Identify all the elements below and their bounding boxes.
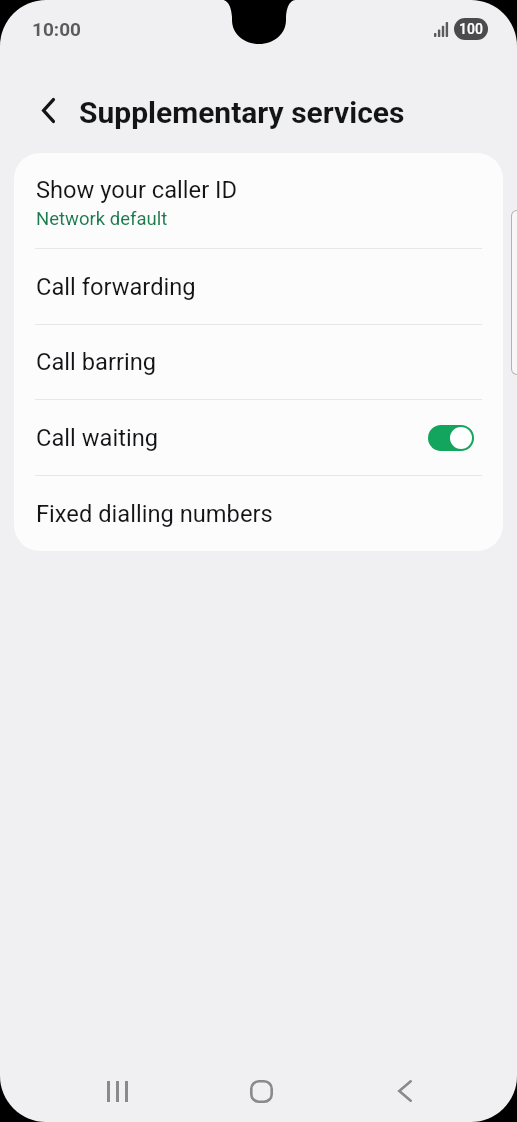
button[interactable]: Home — [189, 1060, 333, 1122]
staticText: Call barring — [36, 348, 157, 376]
button[interactable]: Call barring — [14, 325, 503, 399]
staticText: Supplementary services — [79, 95, 405, 130]
button[interactable]: Back — [333, 1060, 477, 1122]
staticText: 100 — [459, 21, 483, 37]
button[interactable]: Show your caller ID — [14, 153, 503, 248]
button[interactable]: Call waiting toggle — [428, 425, 474, 451]
button[interactable]: Fixed dialling numbers — [14, 476, 503, 551]
staticText: 10:00 — [32, 18, 81, 40]
staticText: Fixed dialling numbers — [36, 500, 273, 528]
staticText: Call forwarding — [36, 273, 196, 301]
button[interactable]: Recents — [45, 1060, 189, 1122]
staticText: Show your caller ID — [36, 176, 238, 204]
staticText: Call waiting — [36, 424, 159, 452]
button[interactable]: Call forwarding — [14, 249, 503, 324]
button[interactable]: Call waiting — [14, 400, 503, 475]
button[interactable]: Back — [29, 91, 67, 129]
staticText: Network default — [36, 208, 168, 230]
